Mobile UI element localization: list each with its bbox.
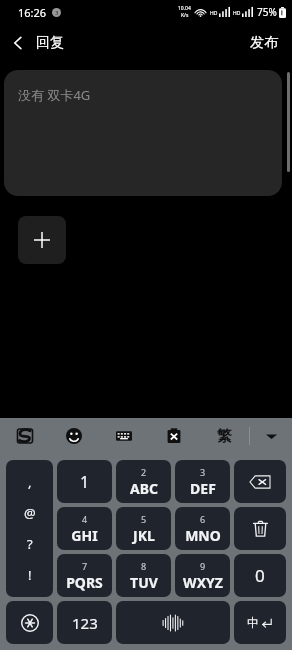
staticText: 没有 双卡4G xyxy=(18,86,91,104)
staticText: 2 xyxy=(141,466,147,478)
staticText: MNO xyxy=(185,526,221,545)
button[interactable]: 2 ABC xyxy=(116,460,171,503)
staticText: PQRS xyxy=(66,573,103,592)
staticText: GHI xyxy=(71,526,98,545)
button[interactable]: 繁 xyxy=(199,418,249,454)
button[interactable]: 1 xyxy=(57,460,112,503)
staticText: 5 xyxy=(141,513,147,525)
staticText: JKL xyxy=(133,526,155,545)
button[interactable]: Collapse keyboard xyxy=(250,418,292,454)
staticText: HD xyxy=(210,10,218,17)
button[interactable]: Sogou input xyxy=(0,418,49,454)
button[interactable]: 9 WXYZ xyxy=(175,554,230,597)
staticText: TUV xyxy=(130,573,158,592)
button[interactable]: Emoji xyxy=(49,418,99,454)
staticText: 3 xyxy=(200,466,206,478)
button[interactable]: 3 DEF xyxy=(175,460,230,503)
staticText: 3 xyxy=(55,9,59,17)
button[interactable]: 4 GHI xyxy=(57,507,112,550)
staticText: 0 xyxy=(255,564,265,587)
button[interactable]: Back xyxy=(0,28,72,58)
button[interactable]: 7 PQRS xyxy=(57,554,112,597)
staticText: 发布 xyxy=(250,34,278,52)
button[interactable]: Clear xyxy=(234,507,286,550)
button[interactable]: 5 JKL xyxy=(116,507,171,550)
staticText: WXYZ xyxy=(183,573,223,592)
staticText: 1 xyxy=(80,471,90,493)
staticText: DEF xyxy=(190,479,216,498)
button[interactable]: Clipboard xyxy=(149,418,199,454)
staticText: @ xyxy=(24,504,36,522)
button[interactable]: 123 xyxy=(57,601,112,644)
staticText: ? xyxy=(27,535,33,553)
button[interactable]: Symbols xyxy=(6,601,53,644)
staticText: 回复 xyxy=(36,34,64,52)
staticText: , xyxy=(28,473,32,491)
button[interactable]: Backspace xyxy=(234,460,286,503)
button[interactable]: Add attachment xyxy=(18,216,66,264)
button[interactable]: , @ ? ! xyxy=(6,460,53,597)
button[interactable]: 0 xyxy=(234,554,286,597)
staticText: 6 xyxy=(200,513,206,525)
button[interactable]: 没有 双卡4G xyxy=(4,70,282,196)
staticText: 75% xyxy=(257,5,277,19)
staticText: 8 xyxy=(141,560,147,572)
staticText: 繁 xyxy=(217,427,232,446)
button[interactable]: 发布 xyxy=(236,26,292,60)
staticText: 4 xyxy=(82,513,88,525)
button[interactable]: Enter xyxy=(234,601,286,644)
staticText: ! xyxy=(28,566,32,584)
button[interactable]: Keyboard layout xyxy=(99,418,149,454)
button[interactable]: 8 TUV xyxy=(116,554,171,597)
staticText: 7 xyxy=(82,560,88,572)
button[interactable]: Voice input xyxy=(116,601,230,644)
staticText: K/s xyxy=(181,12,189,19)
staticText: 9 xyxy=(200,560,206,572)
staticText: ABC xyxy=(130,479,158,498)
staticText: 123 xyxy=(72,613,98,633)
button[interactable]: 6 MNO xyxy=(175,507,230,550)
staticText: 16:26 xyxy=(18,5,47,20)
staticText: 10.04 xyxy=(178,5,191,12)
staticText: HD xyxy=(233,10,241,17)
staticText: 中 xyxy=(247,615,259,630)
other: Back xyxy=(10,35,26,51)
